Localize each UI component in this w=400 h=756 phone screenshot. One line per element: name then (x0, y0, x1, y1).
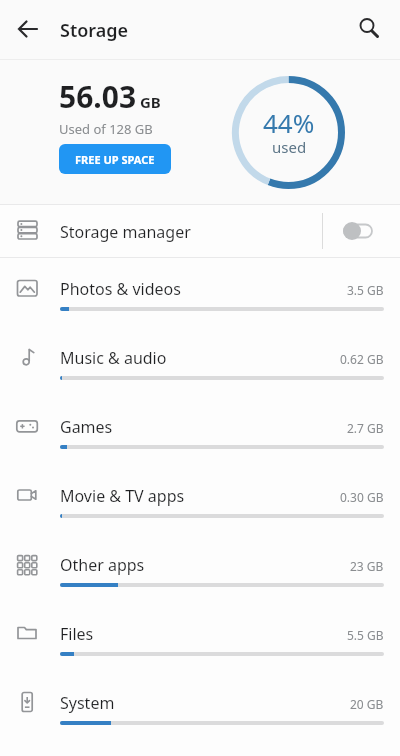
staticText: FREE UP SPACE (75, 152, 155, 167)
staticText: 0.62 GB (340, 351, 384, 367)
button[interactable]: Games (0, 396, 400, 465)
staticText: 2.7 GB (347, 420, 384, 436)
button[interactable]: Storage manager (0, 205, 400, 257)
button[interactable]: Movie & TV apps (0, 465, 400, 534)
staticText: Storage (60, 18, 129, 43)
staticText: Other apps (60, 554, 145, 576)
staticText: used (272, 137, 307, 157)
staticText: Music & audio (60, 347, 167, 369)
button[interactable]: System (0, 672, 400, 741)
staticText: Photos & videos (60, 278, 181, 300)
staticText: 44% (263, 105, 315, 140)
button[interactable] (12, 13, 44, 45)
button[interactable]: Photos & videos (0, 258, 400, 327)
staticText: 20 GB (350, 696, 384, 712)
button[interactable]: Music & audio (0, 327, 400, 396)
staticText: Movie & TV apps (60, 485, 185, 507)
button[interactable]: Files (0, 603, 400, 672)
button[interactable] (352, 10, 384, 42)
staticText: 56.03 GB (59, 76, 161, 117)
staticText: Storage manager (60, 221, 191, 243)
staticText: Files (60, 623, 94, 645)
staticText: 23 GB (350, 558, 384, 574)
staticText: Games (60, 416, 113, 438)
button[interactable]: FREE UP SPACE (59, 144, 171, 174)
button[interactable]: Other apps (0, 534, 400, 603)
button[interactable] (336, 219, 380, 243)
staticText: 3.5 GB (347, 282, 384, 298)
staticText: System (60, 692, 115, 714)
staticText: 0.30 GB (340, 489, 384, 505)
staticText: Used of 128 GB (59, 120, 153, 138)
staticText: 5.5 GB (347, 627, 384, 643)
